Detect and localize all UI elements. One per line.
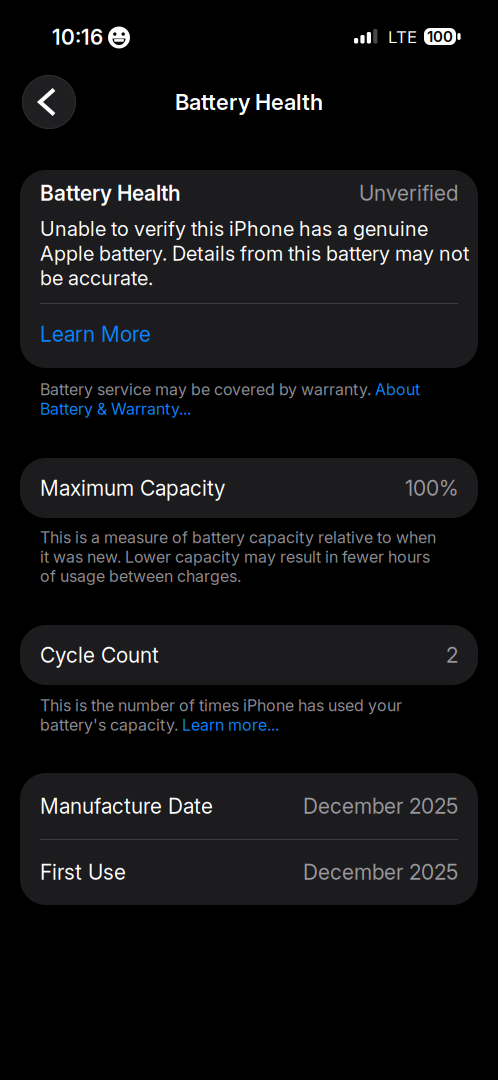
staticText: 2	[446, 643, 458, 667]
staticText: Battery Health	[175, 89, 323, 115]
button[interactable]: About Battery & Warranty	[40, 380, 460, 418]
button[interactable]: Learn More	[40, 320, 458, 347]
staticText: Manufacture Date	[40, 794, 213, 818]
staticText: December 2025	[303, 794, 458, 818]
staticText: Battery Health	[40, 181, 181, 205]
staticText: battery's capacity.	[40, 715, 178, 734]
staticText: About	[375, 380, 420, 399]
staticText: Maximum Capacity	[40, 476, 225, 500]
staticText: Learn More	[40, 322, 151, 346]
staticText: LTE	[388, 27, 417, 47]
staticText: December 2025	[303, 860, 458, 884]
staticText: Cycle Count	[40, 643, 159, 667]
staticText: 10:16	[52, 25, 103, 49]
staticText: This is a measure of battery capacity re…	[40, 528, 436, 586]
staticText: This is the number of times iPhone has u…	[40, 696, 402, 715]
button[interactable]: Learn more	[40, 696, 460, 734]
staticText: 100%	[405, 476, 458, 500]
staticText: Battery & Warranty...	[40, 399, 191, 418]
staticText: Unverified	[359, 181, 458, 205]
staticText: First Use	[40, 860, 126, 884]
staticText: Learn more...	[182, 715, 279, 734]
button[interactable]: Back	[22, 75, 76, 129]
staticText: Battery service may be covered by warran…	[40, 380, 371, 399]
staticText: Unable to verify this iPhone has a genui…	[40, 217, 469, 290]
staticText: 100	[427, 28, 453, 45]
